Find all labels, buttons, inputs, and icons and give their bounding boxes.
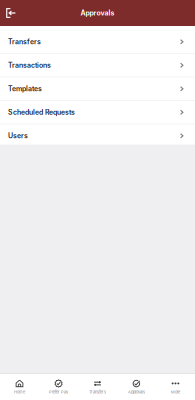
button[interactable]: More [156, 380, 195, 394]
button[interactable]: Home [0, 380, 39, 394]
staticText: Approvals [128, 389, 145, 394]
staticText: Approvals [80, 9, 114, 17]
staticText: Transfers [8, 38, 41, 46]
staticText: Users [8, 132, 28, 140]
button[interactable]: Scheduled Requests [0, 101, 195, 124]
button[interactable]: Approvals [117, 380, 156, 394]
staticText: Templates [8, 85, 42, 93]
button[interactable]: Transfers [78, 380, 117, 394]
button[interactable]: Sign out [0, 1, 22, 25]
button[interactable]: Users [0, 124, 195, 147]
button[interactable]: Prefer Pay [39, 380, 78, 394]
button[interactable]: Transactions [0, 54, 195, 77]
staticText: Transactions [8, 61, 51, 69]
button[interactable]: Transfers [0, 30, 195, 53]
button[interactable]: Templates [0, 77, 195, 100]
staticText: Transfers [89, 389, 106, 394]
staticText: Prefer Pay [49, 389, 68, 394]
staticText: More [171, 389, 180, 394]
staticText: Home [14, 390, 25, 394]
staticText: Scheduled Requests [8, 108, 75, 116]
